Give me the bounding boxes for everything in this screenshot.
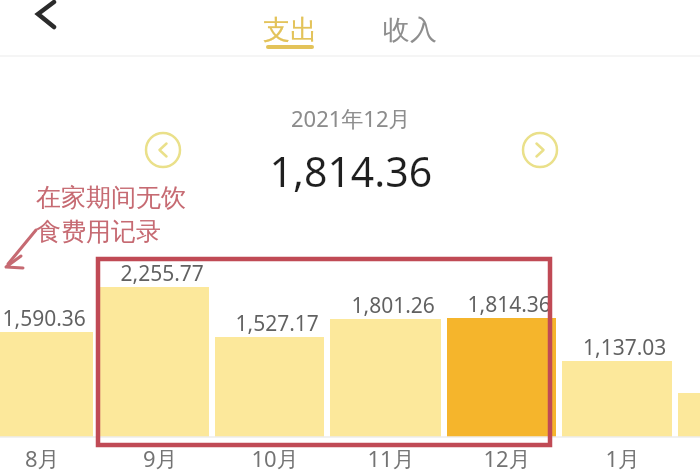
button[interactable]: Back: [8, 0, 68, 50]
button[interactable]: Next month: [520, 130, 560, 170]
button[interactable]: [352, 0, 456, 52]
button[interactable]: [238, 0, 342, 52]
button[interactable]: [0, 252, 700, 470]
button[interactable]: Previous month: [144, 130, 184, 170]
